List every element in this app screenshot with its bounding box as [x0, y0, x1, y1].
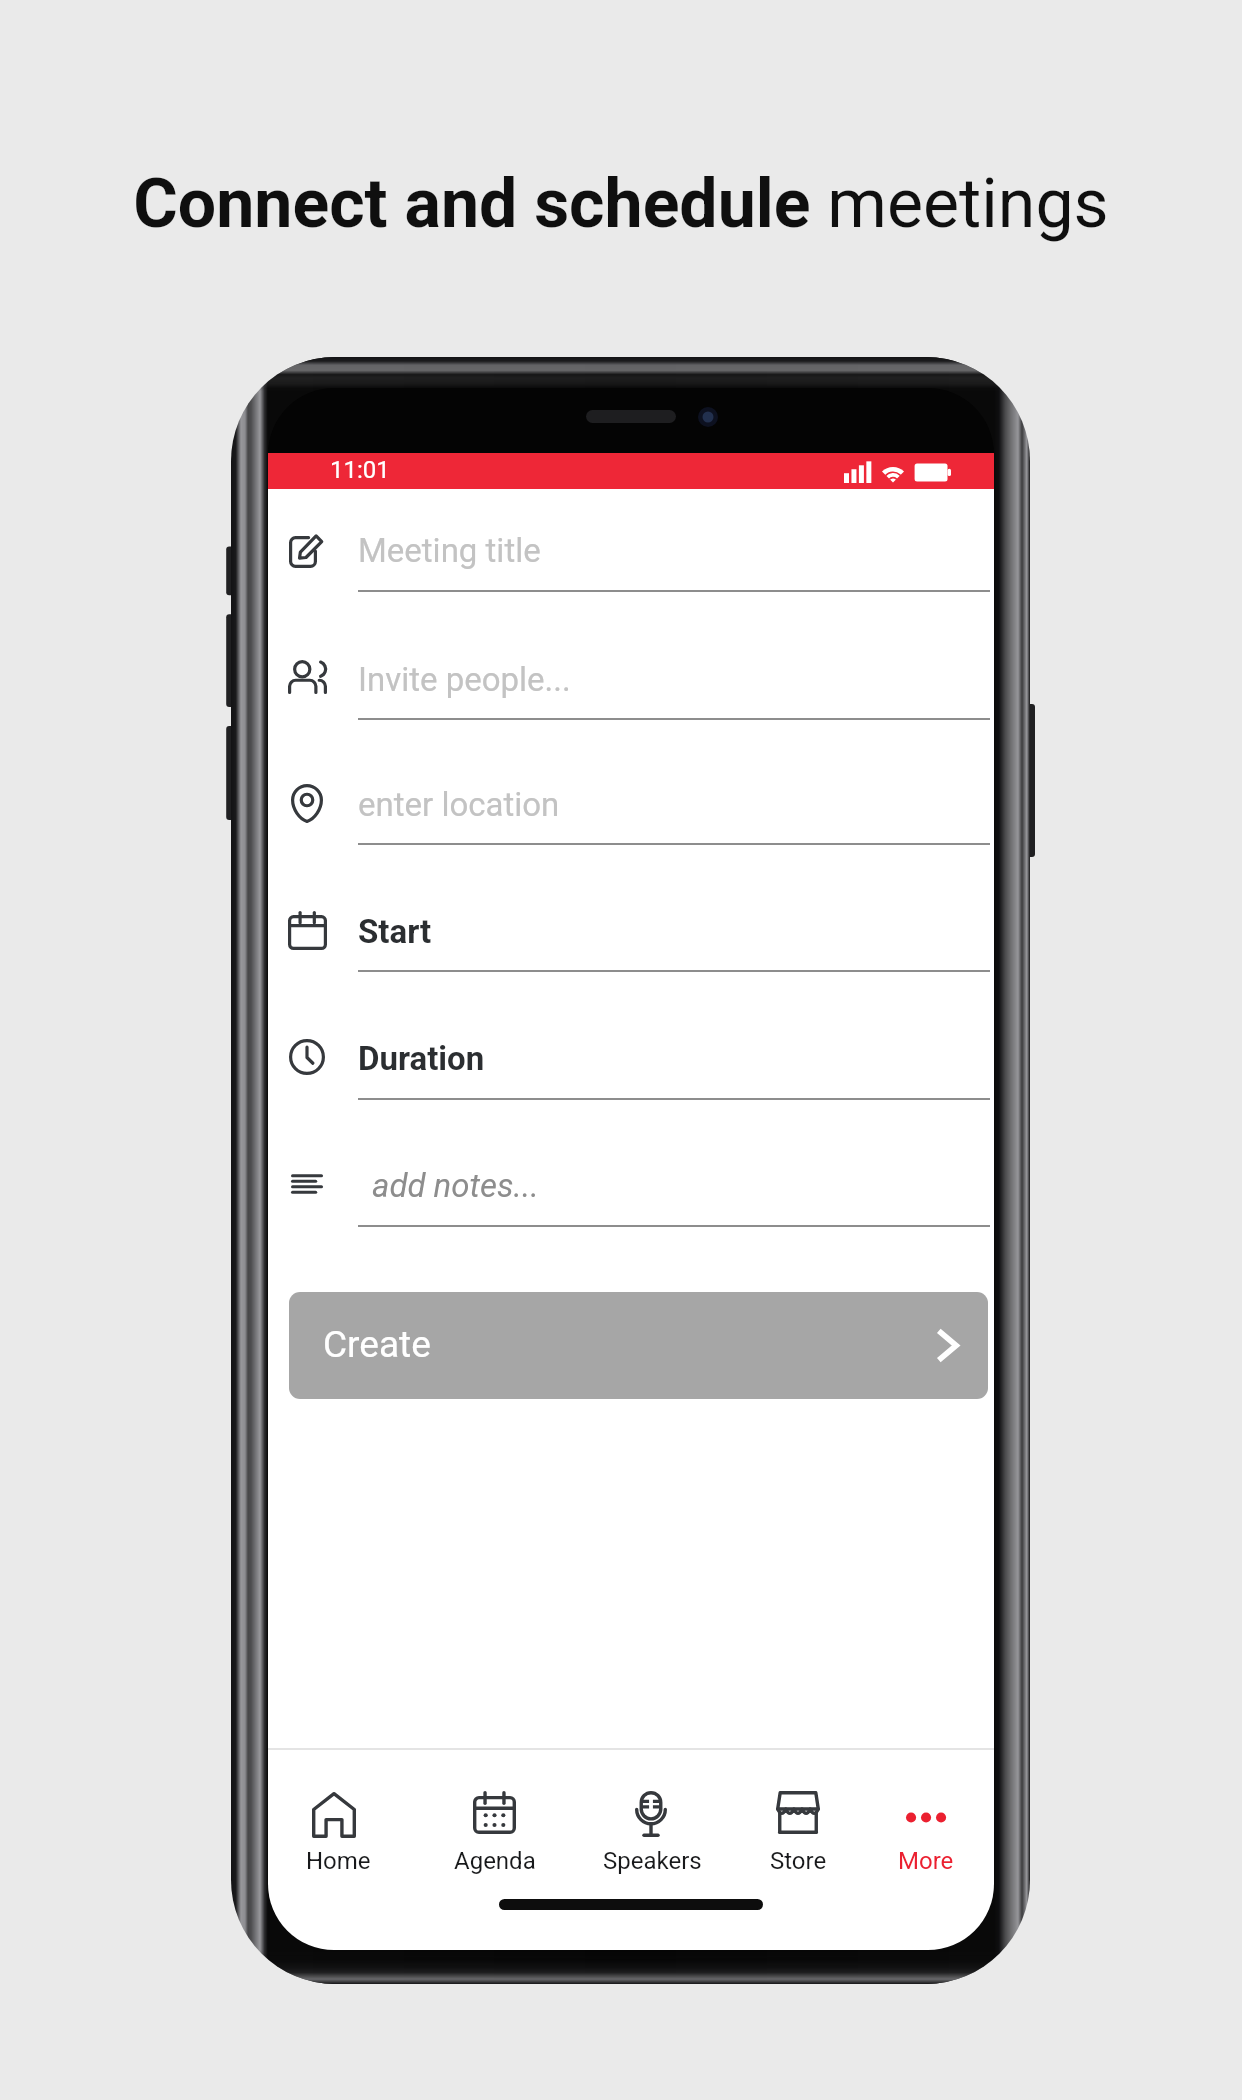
button[interactable]: Store	[727, 1775, 869, 1875]
staticText: Agenda	[454, 1847, 536, 1875]
staticText: enter location	[358, 785, 560, 824]
staticText: Start	[358, 912, 432, 951]
button[interactable]: Home	[268, 1775, 409, 1875]
staticText: Invite people...	[358, 660, 571, 699]
button[interactable]: Speakers	[581, 1775, 723, 1875]
button[interactable]: Start	[268, 869, 994, 971]
button[interactable]: Agenda	[424, 1775, 566, 1875]
button[interactable]: add notes...	[268, 1124, 994, 1226]
staticText: Speakers	[603, 1847, 702, 1875]
staticText: add notes...	[372, 1166, 539, 1205]
button[interactable]: Invite people...	[268, 617, 994, 719]
staticText: Connect and schedule meetings	[133, 164, 1109, 244]
staticText: More	[898, 1847, 954, 1875]
staticText: 11:01	[330, 456, 390, 484]
staticText: Home	[306, 1847, 371, 1875]
button[interactable]: Meeting title	[268, 489, 994, 591]
button[interactable]: Create	[289, 1292, 988, 1399]
button[interactable]: Duration	[268, 997, 994, 1099]
staticText: Duration	[358, 1039, 485, 1078]
button[interactable]: More	[855, 1775, 994, 1875]
staticText: Create	[323, 1323, 431, 1366]
staticText: Meeting title	[358, 531, 541, 570]
staticText: Store	[770, 1847, 827, 1875]
button[interactable]: enter location	[268, 742, 994, 844]
